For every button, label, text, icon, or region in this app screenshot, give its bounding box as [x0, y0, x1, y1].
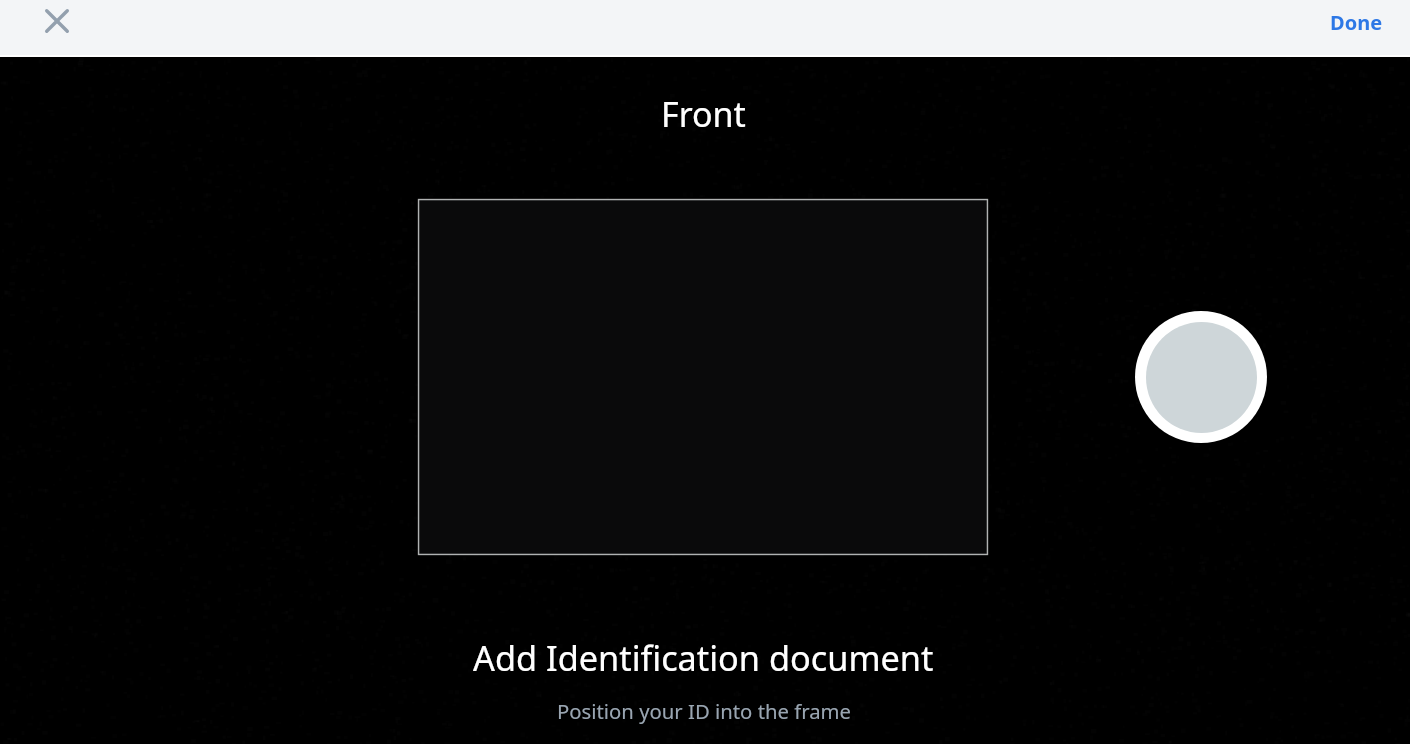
button[interactable]: Capture photo — [1135, 311, 1267, 443]
staticText: Done — [1330, 9, 1383, 36]
staticText: Position your ID into the frame — [557, 697, 852, 725]
button[interactable]: Close — [33, 0, 81, 42]
staticText: Front — [661, 91, 746, 137]
staticText: Add Identification document — [473, 634, 934, 681]
button[interactable]: Done — [1312, 0, 1400, 45]
